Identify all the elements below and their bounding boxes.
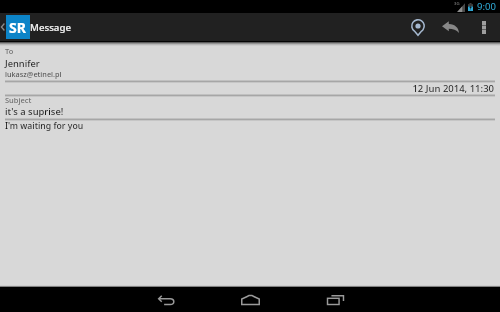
- staticText: 12 Jun 2014, 11:30: [0, 82, 494, 95]
- staticText: Message: [30, 21, 71, 34]
- staticText: Subject: [5, 95, 32, 105]
- staticText: lukasz@etinel.pl: [5, 69, 62, 79]
- button[interactable]: Location: [401, 13, 434, 41]
- staticText: 9:00: [477, 0, 496, 13]
- button[interactable]: SR: [0, 15, 71, 39]
- button[interactable]: More options: [467, 13, 500, 41]
- button[interactable]: Recent apps: [312, 287, 358, 312]
- staticText: I'm waiting for you: [5, 120, 84, 132]
- staticText: To: [5, 46, 14, 56]
- staticText: Jennifer: [5, 57, 40, 70]
- button[interactable]: Reply: [434, 13, 467, 41]
- staticText: SR: [9, 18, 26, 37]
- button[interactable]: Home: [227, 287, 273, 312]
- button[interactable]: Back: [143, 287, 189, 312]
- staticText: it's a suprise!: [5, 105, 64, 118]
- staticText: 3G: [454, 1, 460, 7]
